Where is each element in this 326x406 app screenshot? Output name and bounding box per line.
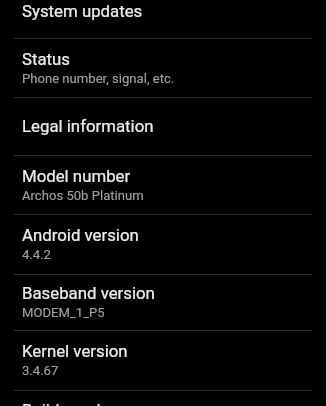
staticText: System updates (22, 1, 143, 21)
button[interactable]: Legal information (0, 98, 326, 155)
staticText: Status (22, 49, 71, 69)
staticText: 4.4.2 (22, 247, 51, 262)
button[interactable]: System updates (0, 1, 326, 21)
staticText: Baseband version (22, 283, 155, 303)
staticText: Phone number, signal, etc. (22, 71, 175, 86)
button[interactable]: Android version (0, 215, 326, 274)
staticText: Archos 50b Platinum (22, 188, 144, 203)
button[interactable]: Kernel version (0, 331, 326, 390)
button[interactable]: Status (0, 39, 326, 97)
staticText: Android version (22, 225, 139, 245)
button[interactable]: Build number (0, 400, 326, 406)
staticText: 3.4.67 (22, 363, 59, 378)
button[interactable]: Baseband version (0, 275, 326, 330)
staticText: Legal information (22, 116, 154, 136)
staticText: MODEM_1_P5 (22, 305, 105, 320)
staticText: Kernel version (22, 341, 128, 361)
staticText: Build number (22, 400, 121, 406)
button[interactable]: Model number (0, 156, 326, 214)
staticText: Model number (22, 166, 131, 186)
